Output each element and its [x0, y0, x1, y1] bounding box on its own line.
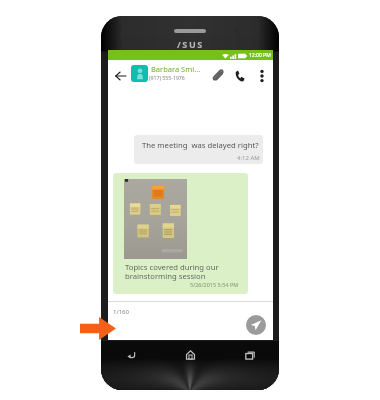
staticText: 1/160	[113, 308, 129, 316]
button[interactable]: Contact photo	[131, 65, 148, 82]
button[interactable]: Topics covered during our brainstorming …	[113, 173, 248, 294]
button[interactable]: Home	[161, 343, 220, 367]
button[interactable]: Back	[111, 63, 129, 88]
staticText: Barbara Smi...	[151, 64, 201, 74]
button[interactable]: Call	[231, 63, 249, 88]
staticText: 4:12 AM	[237, 154, 260, 162]
button[interactable]: Back	[101, 343, 161, 367]
button[interactable]: Send	[246, 315, 266, 335]
button[interactable]: The meeting was delayed right?	[134, 135, 263, 164]
staticText: 12:00 PM	[249, 52, 271, 59]
staticText: /SUS	[177, 38, 204, 50]
button[interactable]: Attach	[209, 63, 227, 88]
staticText: 5/26/2015 5:54 PM	[190, 281, 239, 288]
staticText: (917) 555-1976	[149, 74, 185, 81]
button[interactable]: Recent apps	[220, 343, 279, 367]
staticText: The meeting was delayed right?	[142, 140, 259, 150]
button[interactable]: More options	[254, 63, 270, 88]
staticText: Topics covered during our brainstorming …	[125, 262, 219, 282]
